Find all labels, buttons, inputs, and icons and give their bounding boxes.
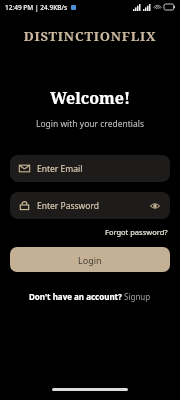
- staticText: Don't have an account?: [29, 291, 124, 302]
- staticText: Enter Email: [37, 163, 83, 175]
- button[interactable]: Login: [10, 247, 170, 272]
- staticText: Signup: [124, 291, 151, 302]
- button[interactable]: Enter Password: [10, 192, 170, 219]
- staticText: Login with your credentials: [0, 118, 180, 130]
- button[interactable]: Show password: [148, 199, 161, 212]
- button[interactable]: Don't have an account?: [26, 290, 154, 303]
- staticText: Login: [78, 254, 102, 266]
- button[interactable]: Forgot password?: [103, 226, 170, 238]
- staticText: Welcome!: [0, 87, 180, 109]
- staticText: DISTINCTIONFLIX: [0, 27, 180, 45]
- staticText: Forgot password?: [105, 227, 168, 237]
- button[interactable]: Enter Email: [10, 155, 170, 182]
- staticText: Enter Password: [37, 200, 100, 212]
- staticText: 12:49 PM | 24.9KB/s: [5, 3, 68, 12]
